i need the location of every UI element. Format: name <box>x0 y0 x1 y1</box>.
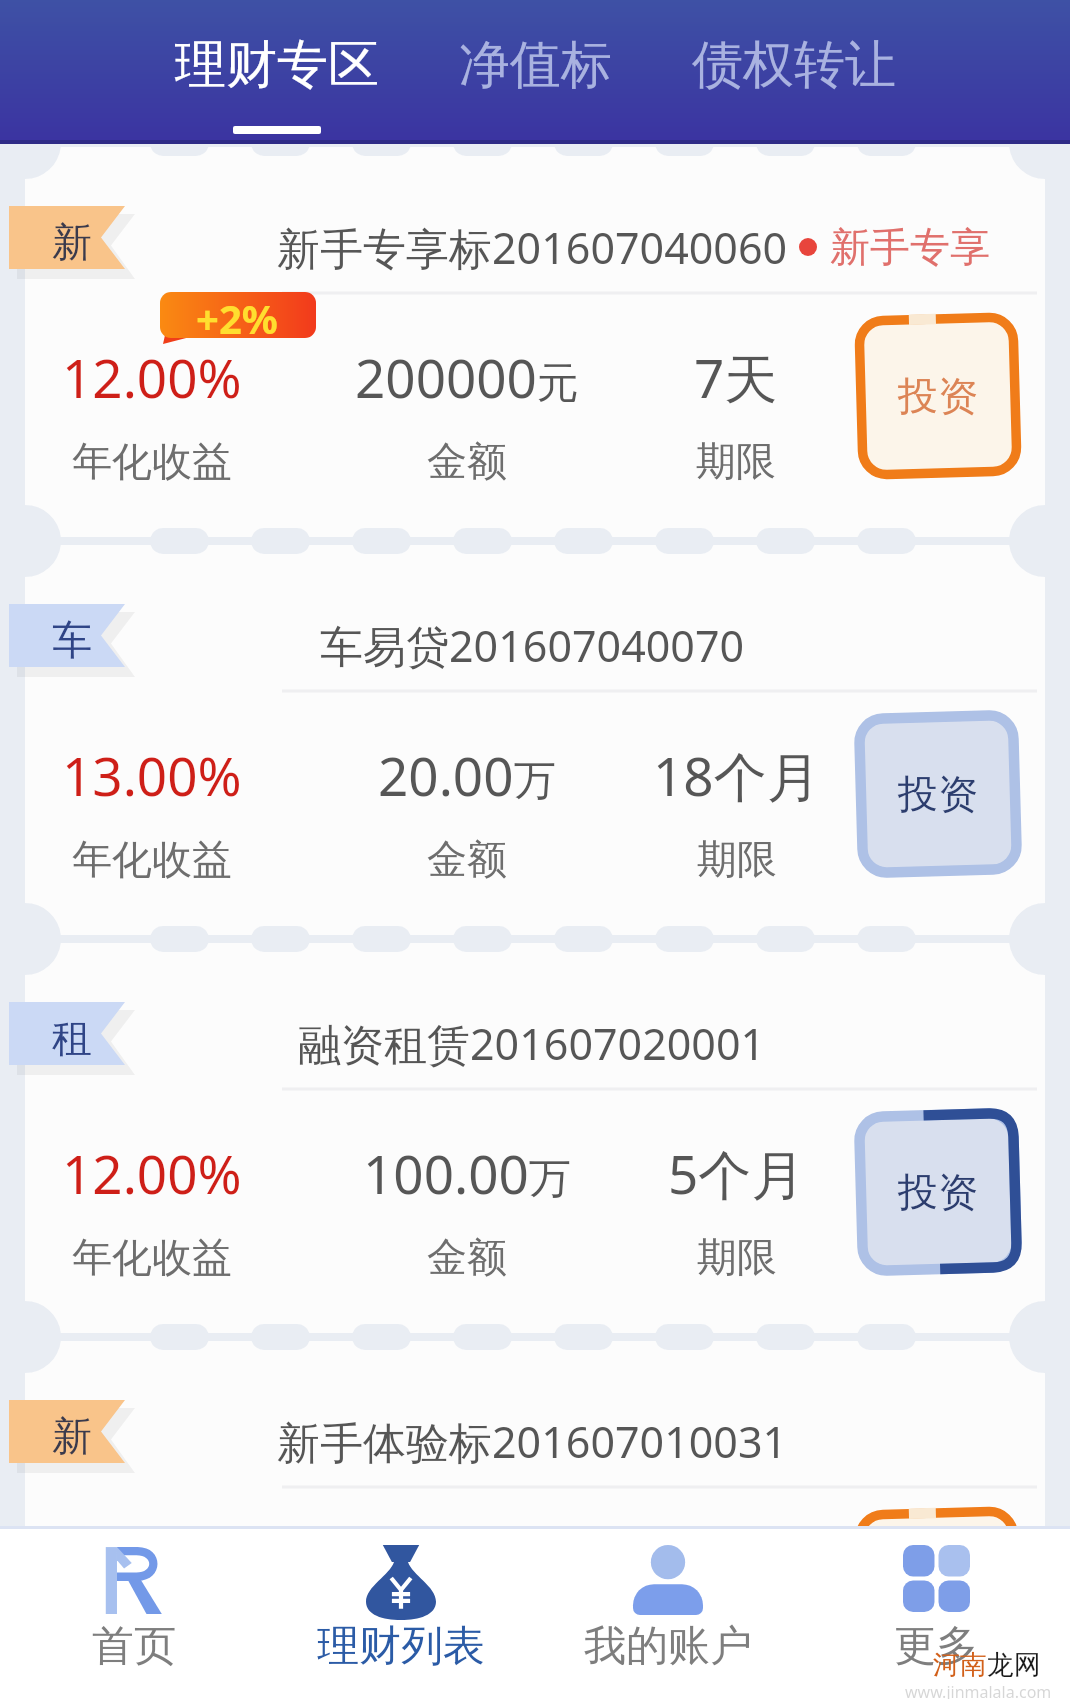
staticText: 车 <box>52 615 92 665</box>
button[interactable]: 更多 <box>802 1529 1070 1699</box>
staticText: 金额 <box>427 436 507 486</box>
staticText: 更多 <box>894 1620 978 1673</box>
other: 我的账户 <box>633 1545 703 1615</box>
staticText: 期限 <box>696 436 776 486</box>
staticText: 7天 <box>694 341 778 413</box>
staticText: 12.00% <box>62 1535 242 1607</box>
staticText: 20.00 <box>378 739 514 811</box>
staticText: 7天 <box>694 1535 778 1607</box>
button[interactable]: 投资 <box>855 313 1021 479</box>
staticText: 净值标 <box>459 33 612 97</box>
button[interactable]: 投资 <box>855 1507 1021 1673</box>
staticText: 金额 <box>427 1630 507 1680</box>
staticText: 车易贷201607040070 <box>320 616 745 675</box>
staticText: 我的账户 <box>584 1620 752 1673</box>
staticText: 5个月 <box>668 1137 805 1209</box>
staticText: www.jinmalala.com <box>905 1681 1052 1699</box>
staticText: 期限 <box>696 1630 776 1680</box>
staticText: 新 <box>52 217 92 267</box>
staticText: 投资 <box>898 371 978 421</box>
staticText: 200000 <box>355 341 537 413</box>
staticText: 金额 <box>427 1232 507 1282</box>
staticText: 理财列表 <box>317 1620 485 1673</box>
button[interactable]: 净值标 <box>459 0 612 134</box>
staticText: 年化收益 <box>72 436 232 486</box>
staticText: 新手专享 <box>830 222 990 272</box>
other: 首页 <box>104 1545 163 1614</box>
staticText: 龙网 <box>987 1648 1041 1682</box>
staticText: 金额 <box>427 834 507 884</box>
button[interactable]: 债权转让 <box>692 0 896 134</box>
staticText: 50000 <box>370 1535 522 1607</box>
staticText: 新 <box>52 1411 92 1461</box>
button[interactable]: 投资 <box>855 1109 1021 1275</box>
staticText: 理财专区 <box>175 33 379 97</box>
staticText: 投资 <box>898 1565 978 1615</box>
staticText: 100.00 <box>363 1137 529 1209</box>
staticText: 首页 <box>92 1620 176 1673</box>
button[interactable]: 我的账户 <box>534 1529 802 1699</box>
staticText: 期限 <box>697 1232 777 1282</box>
staticText: 13.00% <box>62 739 242 811</box>
staticText: 债权转让 <box>692 33 896 97</box>
staticText: 18个月 <box>653 739 820 811</box>
staticText: 新手专享标201607040060 <box>277 218 788 277</box>
staticText: 投资 <box>898 1167 978 1217</box>
button[interactable]: 理财专区 <box>175 0 379 134</box>
staticText: 期限 <box>697 834 777 884</box>
staticText: 河南 <box>933 1648 987 1682</box>
staticText: 融资租赁201607020001 <box>298 1014 766 1073</box>
button[interactable]: 理财列表 <box>267 1529 534 1699</box>
button[interactable]: 投资 <box>855 711 1021 877</box>
staticText: +2% <box>196 291 278 345</box>
staticText: 万 <box>529 1153 571 1206</box>
staticText: 万 <box>514 755 556 808</box>
button[interactable]: 首页 <box>0 1529 267 1699</box>
other: 理财列表 <box>366 1545 436 1620</box>
staticText: 新手体验标201607010031 <box>277 1412 788 1471</box>
staticText: 年化收益 <box>72 1232 232 1282</box>
staticText: 12.00% <box>62 341 242 413</box>
staticText: 年化收益 <box>72 1630 232 1680</box>
staticText: 12.00% <box>62 1137 242 1209</box>
staticText: 租 <box>52 1013 92 1063</box>
staticText: 投资 <box>898 769 978 819</box>
staticText: 年化收益 <box>72 834 232 884</box>
other: 更多 <box>903 1545 970 1612</box>
staticText: 元 <box>537 357 579 410</box>
